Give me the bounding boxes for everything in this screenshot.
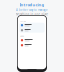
staticText: A better way to manage	[16, 8, 48, 12]
staticText: MORE	[20, 35, 24, 37]
staticText: SECTION	[20, 20, 26, 22]
staticText: everything in one place	[15, 12, 48, 16]
staticText: Introducing	[19, 2, 44, 7]
